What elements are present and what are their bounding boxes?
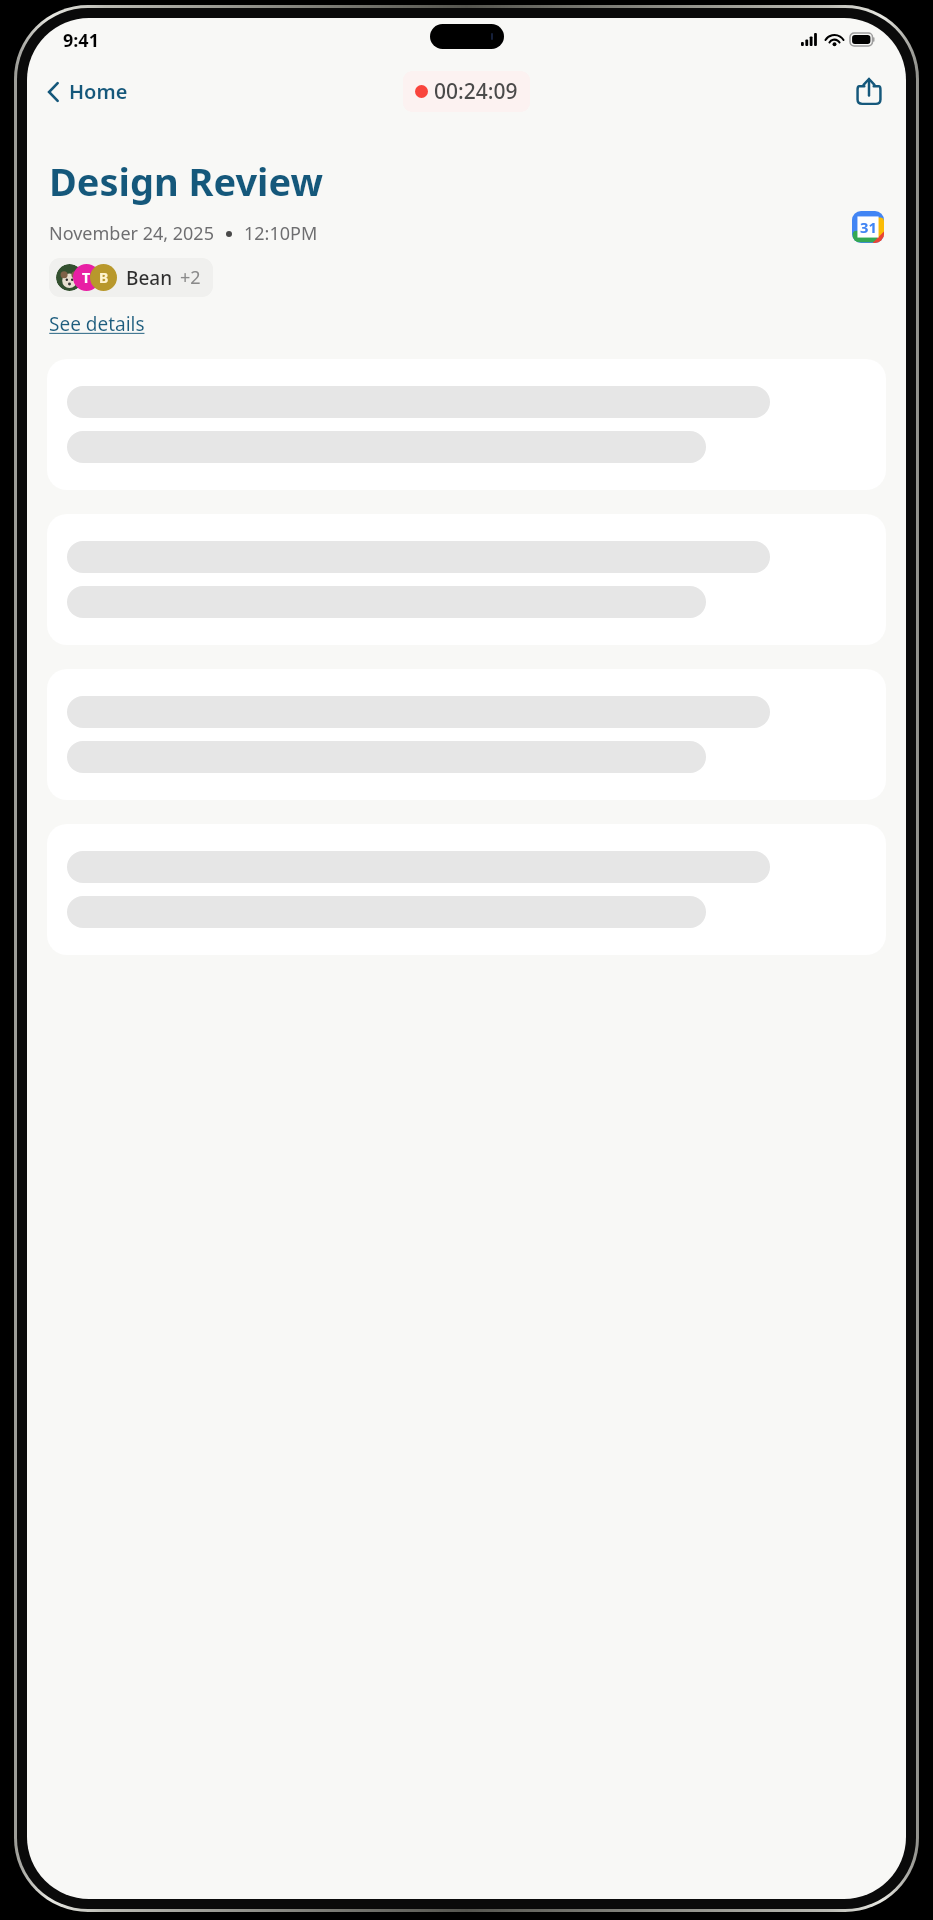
button[interactable]: Google Calendar bbox=[852, 211, 884, 243]
staticText: 9:41 bbox=[63, 28, 99, 53]
button[interactable] bbox=[47, 824, 886, 955]
staticText: T bbox=[82, 268, 91, 287]
button[interactable]: T bbox=[49, 258, 213, 297]
staticText: Bean bbox=[126, 265, 173, 291]
button[interactable]: Home bbox=[27, 72, 138, 111]
staticText: Home bbox=[69, 78, 128, 105]
staticText: B bbox=[99, 268, 109, 287]
staticText: 00:24:09 bbox=[434, 77, 518, 106]
button[interactable] bbox=[47, 669, 886, 800]
staticText: 12:10PM bbox=[244, 221, 318, 246]
staticText: +2 bbox=[180, 265, 201, 290]
button[interactable]: Share bbox=[846, 67, 892, 115]
button[interactable] bbox=[47, 514, 886, 645]
staticText: 31 bbox=[860, 217, 877, 237]
staticText: November 24, 2025 bbox=[49, 221, 214, 246]
button[interactable]: 00:24:09 bbox=[403, 71, 530, 112]
button[interactable]: See details bbox=[49, 311, 145, 337]
staticText: See details bbox=[49, 311, 145, 337]
button[interactable] bbox=[47, 359, 886, 490]
staticText: Design Review bbox=[49, 155, 323, 207]
